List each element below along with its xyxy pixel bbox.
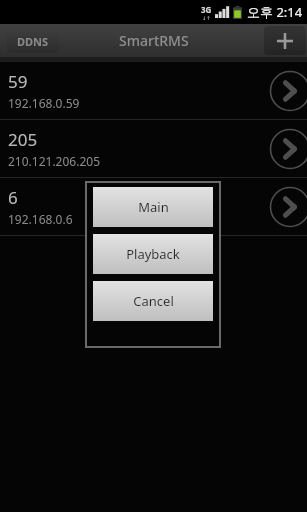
button[interactable]: Playback (93, 234, 213, 274)
button[interactable]: DDNS (7, 29, 59, 53)
staticText: 205 (8, 128, 38, 151)
staticText: 192.168.0.6 (8, 211, 73, 227)
button[interactable]: Cancel (93, 281, 213, 321)
button[interactable]: Main (93, 187, 213, 227)
staticText: Cancel (133, 292, 174, 310)
staticText: 59 (8, 70, 28, 93)
staticText: 오후 2:14 (247, 3, 303, 21)
staticText: 3G (201, 4, 212, 15)
button[interactable]: 205 (0, 120, 307, 177)
button[interactable]: Add (264, 26, 306, 55)
staticText: Main (138, 198, 169, 216)
staticText: 6 (8, 186, 18, 209)
staticText: SmartRMS (119, 31, 189, 50)
staticText: 192.168.0.59 (8, 95, 80, 111)
staticText: ↓↑ (202, 15, 211, 21)
staticText: DDNS (17, 34, 49, 49)
button[interactable]: 59 (0, 62, 307, 119)
button[interactable]: 6 (0, 178, 307, 235)
staticText: 210.121.206.205 (8, 153, 101, 169)
staticText: Playback (126, 245, 180, 263)
